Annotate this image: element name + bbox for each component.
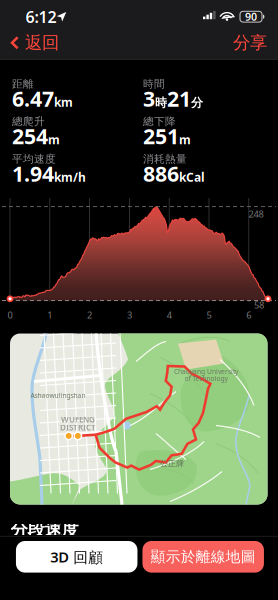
staticText: 248 bbox=[248, 208, 263, 220]
staticText: 3 bbox=[143, 84, 155, 113]
staticText: kCal bbox=[179, 169, 205, 185]
staticText: 顯示於離線地圖 bbox=[151, 548, 256, 566]
staticText: 6:12 bbox=[25, 6, 56, 27]
staticText: m bbox=[48, 132, 60, 148]
staticText: 總爬升 bbox=[12, 115, 45, 128]
staticText: Ashaowulingshan bbox=[30, 391, 85, 400]
staticText: 返回 bbox=[25, 32, 59, 53]
staticText: 6 bbox=[246, 309, 251, 321]
staticText: 總下降 bbox=[143, 115, 176, 128]
staticText: 時 bbox=[155, 95, 167, 110]
staticText: 4 bbox=[167, 309, 172, 321]
staticText: 5 bbox=[206, 309, 211, 321]
staticText: 2 bbox=[87, 309, 92, 321]
staticText: 公正牌 bbox=[160, 459, 184, 468]
staticText: WUFENG bbox=[61, 414, 95, 425]
staticText: 距離 bbox=[12, 77, 34, 90]
button[interactable]: 返回 bbox=[2, 26, 67, 59]
staticText: km/h bbox=[54, 169, 86, 185]
staticText: 58 bbox=[254, 299, 264, 311]
button[interactable]: 顯示於離線地圖 bbox=[142, 541, 264, 573]
staticText: 3 bbox=[127, 309, 132, 321]
staticText: 1.94 bbox=[12, 159, 54, 188]
staticText: of Technology bbox=[184, 374, 227, 383]
staticText: km bbox=[54, 94, 73, 110]
staticText: 分享 bbox=[233, 32, 267, 53]
staticText: Chaoyang University bbox=[174, 367, 238, 376]
staticText: 90 bbox=[245, 9, 257, 24]
button[interactable]: 3D 回顧 bbox=[16, 541, 137, 573]
staticText: 分 bbox=[191, 95, 203, 110]
staticText: 1 bbox=[47, 309, 52, 321]
staticText: 分段速度 bbox=[10, 519, 78, 540]
staticText: 886 bbox=[143, 159, 179, 188]
staticText: 21 bbox=[167, 84, 191, 113]
staticText: DISTRICT bbox=[60, 422, 96, 433]
button[interactable]: 分享 bbox=[223, 26, 278, 59]
staticText: 消耗熱量 bbox=[143, 152, 187, 165]
staticText: 254 bbox=[12, 122, 48, 150]
staticText: 0 bbox=[7, 309, 12, 321]
staticText: 3D 回顧 bbox=[50, 547, 103, 567]
staticText: m bbox=[179, 132, 191, 148]
staticText: 時間 bbox=[143, 77, 165, 90]
staticText: 251 bbox=[143, 122, 179, 150]
staticText: 平均速度 bbox=[12, 152, 56, 165]
staticText: 6.47 bbox=[12, 84, 54, 113]
